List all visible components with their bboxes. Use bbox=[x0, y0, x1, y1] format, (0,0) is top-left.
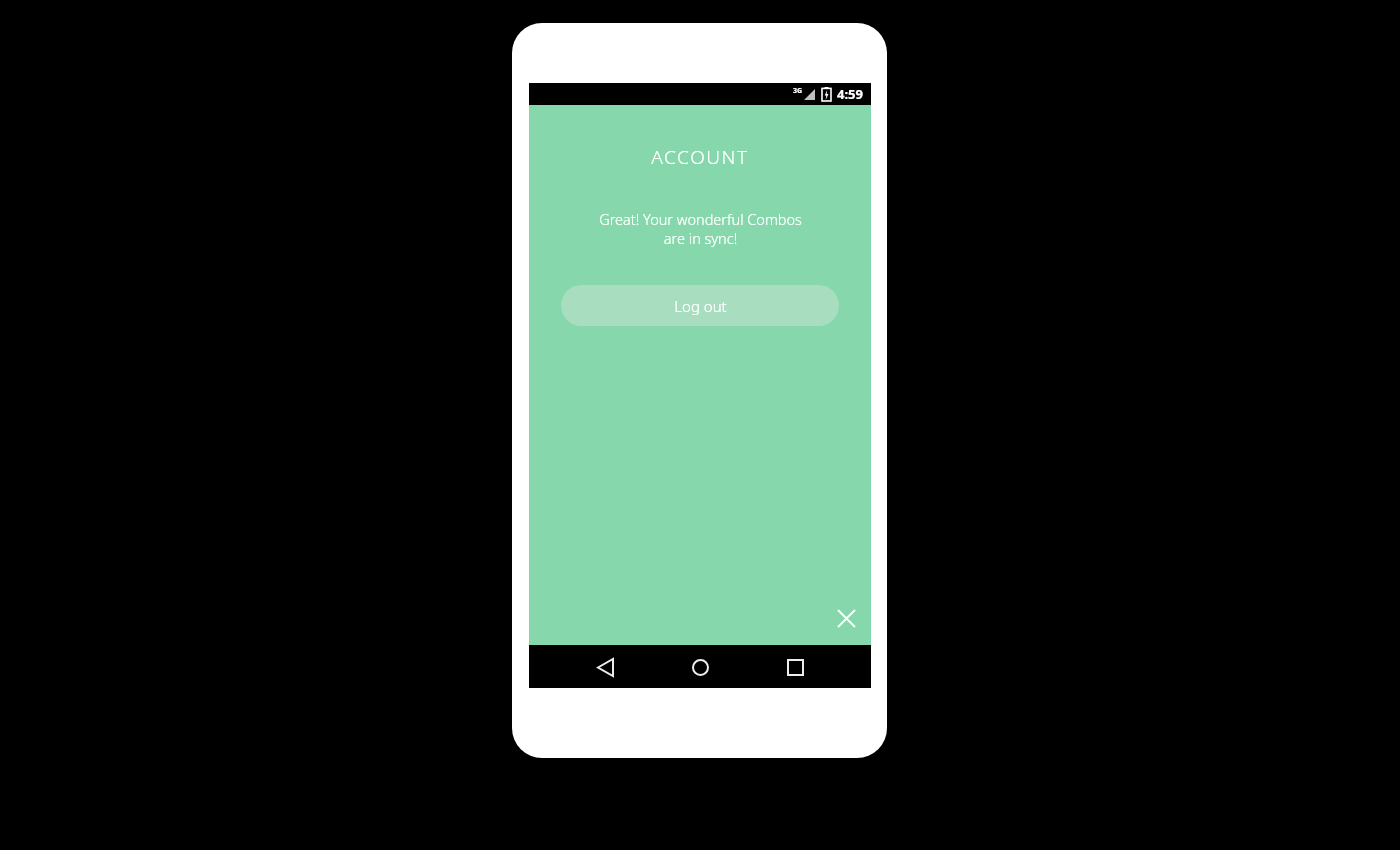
staticText: 3G bbox=[793, 86, 803, 96]
button[interactable]: Log out bbox=[561, 285, 839, 326]
button[interactable]: Home bbox=[680, 647, 720, 687]
button[interactable]: Back bbox=[585, 647, 625, 687]
staticText: ACCOUNT bbox=[651, 144, 749, 170]
button[interactable]: Close bbox=[829, 601, 863, 635]
staticText: 4:59 bbox=[837, 85, 863, 103]
staticText: Log out bbox=[674, 296, 727, 316]
staticText: Great! Your wonderful Combos are in sync… bbox=[599, 209, 802, 248]
button[interactable]: Recent apps bbox=[775, 647, 815, 687]
